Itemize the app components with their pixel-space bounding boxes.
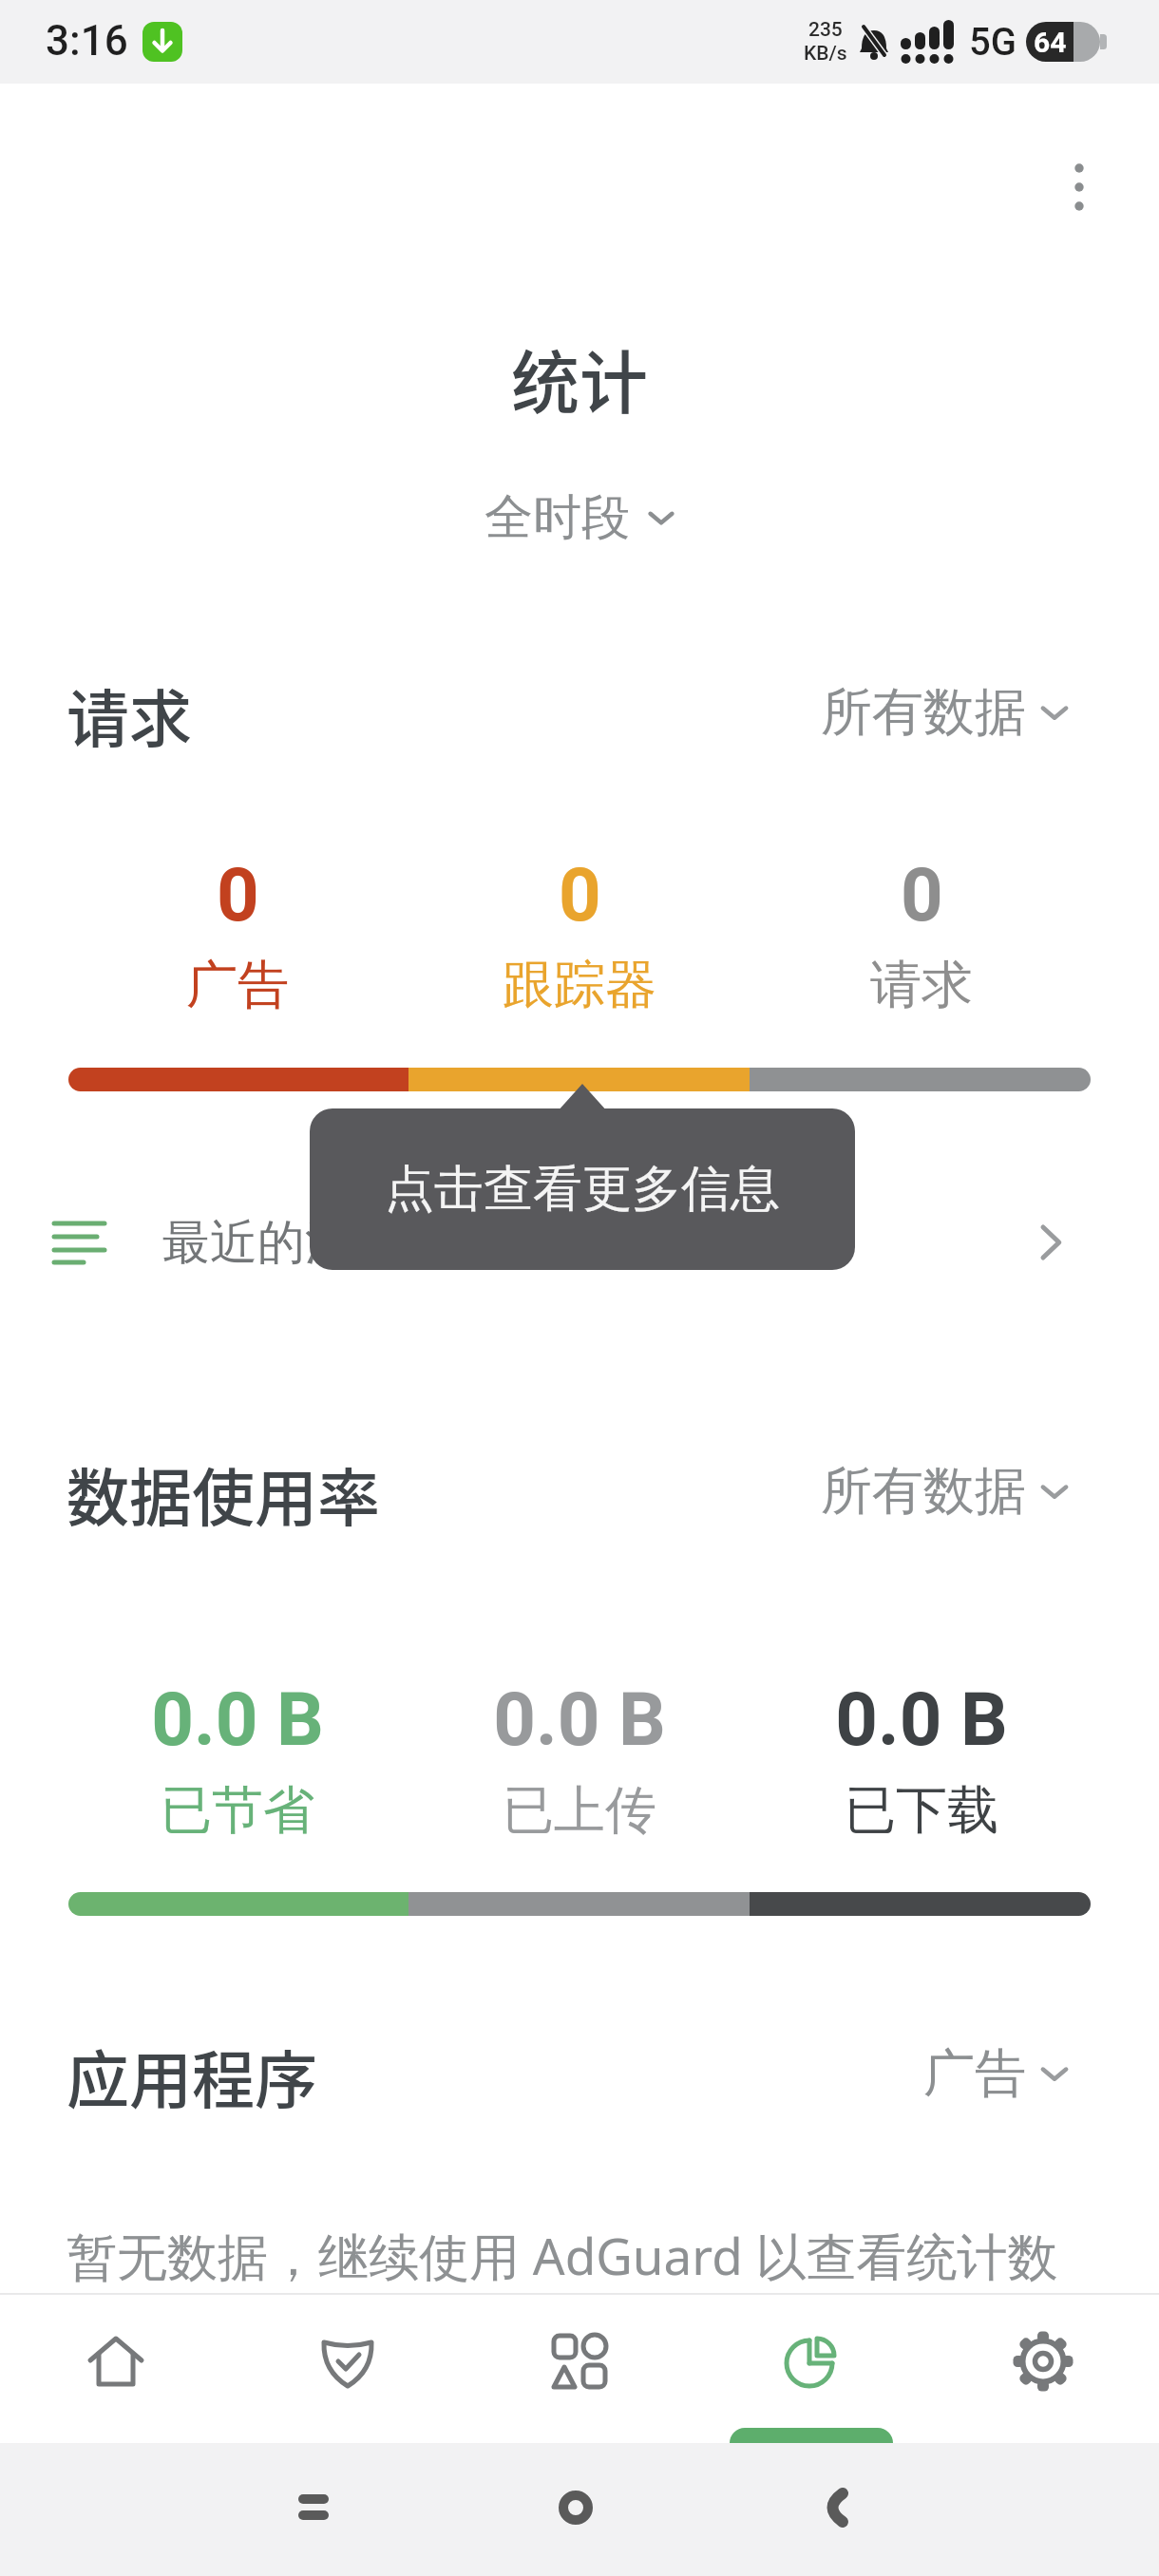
staticText: 请求 [66, 669, 192, 756]
staticText: 64 [1034, 26, 1067, 59]
staticText: 统计 [511, 328, 649, 423]
button[interactable] [232, 2295, 464, 2443]
staticText: 数据使用率 [66, 1448, 380, 1535]
staticText: 请求 [870, 953, 973, 1017]
staticText: 暂无数据，继续使用 AdGuard 以查看统计数 [66, 2221, 1058, 2289]
staticText: KB/s [804, 42, 847, 66]
staticText: 0 [901, 852, 943, 938]
button[interactable] [68, 1892, 1091, 1916]
button[interactable] [68, 1068, 1091, 1091]
staticText: 所有数据 [821, 680, 1026, 745]
staticText: 已上传 [503, 1778, 656, 1843]
staticText: 跟踪器 [503, 953, 656, 1017]
button[interactable]: 点击查看更多信息 [310, 1108, 855, 1270]
staticText: 全时段 [484, 487, 630, 548]
button[interactable] [927, 2295, 1159, 2443]
button[interactable] [464, 2295, 695, 2443]
button[interactable] [281, 2445, 348, 2570]
button[interactable] [695, 2295, 927, 2443]
staticText: 广告 [186, 953, 289, 1017]
staticText: 0 [217, 852, 259, 938]
staticText: 5G [969, 20, 1016, 65]
button[interactable] [803, 2445, 869, 2570]
staticText: 0 [559, 852, 601, 938]
staticText: 0.0 B [493, 1676, 666, 1763]
button[interactable]: 全时段 [484, 484, 675, 551]
button[interactable] [1054, 152, 1105, 222]
staticText: 点击查看更多信息 [385, 1158, 780, 1221]
button[interactable] [0, 2295, 232, 2443]
staticText: 所有数据 [821, 1459, 1026, 1524]
staticText: 235 [808, 18, 843, 42]
staticText: 已节省 [161, 1778, 314, 1843]
staticText: 0.0 B [835, 1676, 1008, 1763]
staticText: 已下载 [845, 1778, 998, 1843]
button[interactable]: 所有数据 [821, 680, 1070, 745]
staticText: 3:16 [46, 16, 128, 66]
button[interactable]: 广告 [923, 2041, 1070, 2106]
staticText: 广告 [923, 2041, 1026, 2106]
button[interactable]: 最近的活动 [0, 1185, 1159, 1299]
staticText: 应用程序 [66, 2030, 317, 2117]
staticText: 最近的活动 [162, 1213, 400, 1273]
staticText: 0.0 B [151, 1676, 324, 1763]
button[interactable] [542, 2445, 609, 2570]
button[interactable]: 所有数据 [821, 1459, 1070, 1524]
